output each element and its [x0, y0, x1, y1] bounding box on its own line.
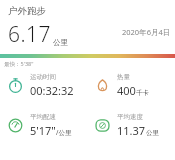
button[interactable]: Duration [0, 73, 87, 98]
staticText: 公里 [146, 129, 159, 137]
staticText: 400 [117, 83, 136, 98]
other: Duration [7, 77, 24, 94]
staticText: 公里 [53, 38, 68, 47]
other: Calories [94, 77, 111, 94]
staticText: 00:32:32 [30, 83, 74, 98]
staticText: 运动时间 [30, 73, 56, 81]
staticText: 5'17" [30, 123, 56, 138]
staticText: 千卡 [136, 89, 149, 97]
other: Average pace [7, 117, 24, 134]
button[interactable]: Average speed [87, 113, 175, 138]
other: Average speed [94, 117, 111, 134]
staticText: 平均速度 [117, 113, 143, 121]
staticText: 最快：5'38" [4, 60, 34, 68]
button[interactable]: Average pace [0, 113, 87, 138]
button[interactable]: Calories [87, 73, 175, 98]
staticText: /公里 [56, 128, 72, 137]
staticText: 11.37 [117, 123, 146, 138]
staticText: 平均配速 [30, 113, 56, 121]
staticText: 2020年6月4日 [122, 27, 171, 37]
staticText: 户外跑步 [8, 5, 46, 17]
staticText: 6.17 [8, 20, 52, 49]
staticText: 热量 [117, 73, 130, 81]
